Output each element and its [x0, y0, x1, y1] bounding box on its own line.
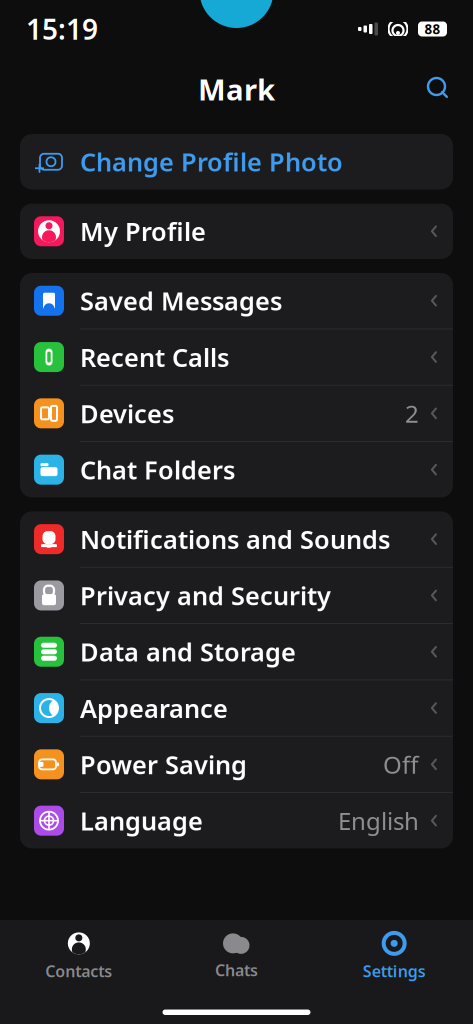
staticText: Off — [383, 748, 419, 780]
button[interactable]: Chat Folders — [20, 442, 453, 497]
button[interactable]: My Profile — [20, 203, 453, 259]
staticText: Power Saving — [80, 747, 247, 781]
staticText: 88 — [424, 20, 440, 38]
button[interactable]: Search — [417, 67, 461, 111]
staticText: Notifications and Sounds — [80, 522, 390, 556]
staticText: Chat Folders — [80, 453, 235, 486]
button[interactable]: Data and Storage — [20, 624, 453, 679]
staticText: Language — [80, 804, 203, 837]
button[interactable]: Notifications and Sounds — [20, 511, 453, 567]
button[interactable]: Language — [20, 793, 453, 848]
staticText: 15:19 — [26, 10, 98, 48]
button[interactable]: Devices — [20, 386, 453, 441]
button[interactable]: Appearance — [20, 680, 453, 736]
button[interactable]: Recent Calls — [20, 329, 453, 385]
staticText: Privacy and Security — [80, 579, 331, 612]
staticText: My Profile — [80, 214, 206, 248]
staticText: Devices — [80, 396, 174, 430]
button[interactable]: Saved Messages — [20, 273, 453, 328]
staticText: Data and Storage — [80, 635, 296, 668]
staticText: Appearance — [80, 691, 228, 725]
staticText: Saved Messages — [80, 284, 282, 317]
button[interactable]: Privacy and Security — [20, 568, 453, 623]
staticText: Recent Calls — [80, 340, 229, 374]
staticText: Change Profile Photo — [80, 145, 343, 178]
staticText: 2 — [405, 397, 419, 429]
button[interactable]: Settings — [315, 920, 473, 982]
staticText: Settings — [363, 960, 426, 982]
staticText: Mark — [198, 69, 275, 108]
staticText: English — [338, 805, 419, 837]
staticText: Contacts — [45, 960, 112, 982]
button[interactable]: Change Profile Photo — [20, 134, 453, 189]
staticText: Chats — [215, 959, 258, 981]
button[interactable]: Power Saving — [20, 737, 453, 792]
button[interactable]: Contacts — [0, 920, 158, 982]
button[interactable]: Chats — [158, 921, 315, 981]
